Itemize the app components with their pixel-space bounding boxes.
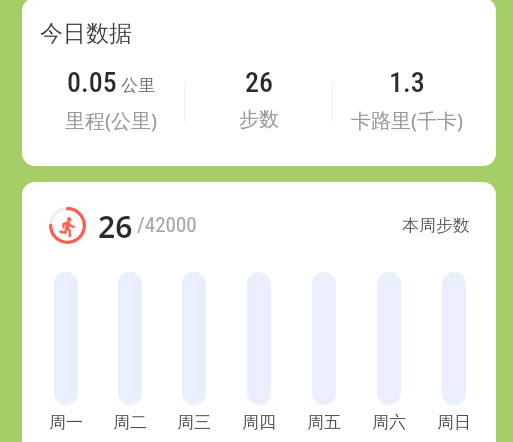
staticText: 步数 [239,107,279,132]
staticText: 26 [245,66,273,99]
staticText: 周日 [437,412,471,433]
staticText: 0.05 [67,66,117,99]
button[interactable]: 周五 [291,412,356,433]
staticText: 本周步数 [402,215,470,236]
button[interactable]: 周六 [356,412,421,433]
staticText: 周二 [113,412,147,433]
button[interactable]: 周三 [162,412,226,433]
button[interactable]: Steps progress [22,182,496,442]
button[interactable]: 今日数据 [22,0,496,166]
staticText: 周一 [49,412,83,433]
button[interactable]: 0.05 [38,66,184,132]
button[interactable]: 周日 [421,412,486,433]
staticText: 卡路里(千卡) [351,107,463,132]
button[interactable]: 1.3 [333,66,480,132]
staticText: 周六 [372,412,406,433]
button[interactable]: 周一 [34,412,98,433]
staticText: 1.3 [389,66,425,99]
staticText: 周四 [242,412,276,433]
staticText: 26 [98,206,133,244]
button[interactable]: 周四 [226,412,291,433]
staticText: /42000 [137,213,197,238]
staticText: 今日数据 [40,19,132,48]
staticText: 公里 [121,75,155,96]
button[interactable]: 周二 [98,412,162,433]
button[interactable]: 26 [185,66,332,132]
staticText: 周五 [307,412,341,433]
staticText: 周三 [177,412,211,433]
staticText: 里程(公里) [65,107,157,132]
other: Steps progress [49,207,86,244]
